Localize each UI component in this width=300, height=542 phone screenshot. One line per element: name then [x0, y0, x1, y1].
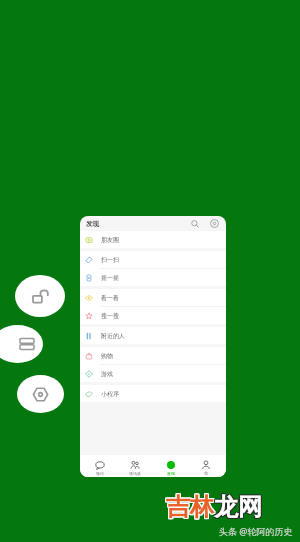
staticText: 扫一扫: [101, 256, 119, 264]
button[interactable]: Search: [188, 217, 201, 230]
staticText: 吉林: [166, 492, 214, 522]
staticText: 附近的人: [101, 332, 125, 340]
staticText: 龙网: [215, 491, 263, 521]
staticText: 发现: [167, 471, 175, 476]
staticText: 小程序: [101, 390, 119, 398]
staticText: 龙网: [214, 491, 262, 521]
staticText: 发现: [86, 220, 99, 228]
button[interactable]: 朋友圈: [80, 231, 226, 248]
staticText: 龙网: [213, 491, 261, 521]
staticText: 龙网: [215, 492, 263, 522]
staticText: 吉林: [167, 491, 215, 521]
staticText: 购物: [101, 352, 113, 360]
staticText: 通讯录: [129, 471, 141, 476]
button[interactable]: Unlock: [15, 275, 65, 317]
button[interactable]: 附近的人: [80, 327, 226, 344]
staticText: 游戏: [101, 370, 113, 378]
button[interactable]: 小程序: [80, 385, 226, 402]
staticText: 我: [204, 471, 208, 476]
staticText: 吉林: [165, 491, 213, 521]
button[interactable]: 通讯录: [119, 459, 151, 477]
button[interactable]: 购物: [80, 347, 226, 364]
button[interactable]: Split screen: [0, 325, 43, 363]
staticText: 吉林: [166, 491, 214, 521]
button[interactable]: 游戏: [80, 365, 226, 382]
staticText: 吉林: [167, 493, 215, 523]
button[interactable]: Settings: [17, 375, 64, 413]
button[interactable]: 看一看: [80, 289, 226, 306]
staticText: 吉林: [165, 493, 213, 523]
staticText: 吉林: [165, 492, 213, 522]
staticText: 朋友圈: [101, 236, 119, 244]
button[interactable]: 我: [190, 459, 222, 477]
staticText: 龙网: [213, 492, 261, 522]
staticText: 吉林: [167, 492, 215, 522]
button[interactable]: 摇一摇: [80, 269, 226, 286]
staticText: 头条 @轮阿的历史: [219, 525, 293, 537]
staticText: 微信: [96, 471, 104, 476]
button[interactable]: 微信: [84, 459, 116, 477]
staticText: 摇一摇: [101, 274, 119, 282]
button[interactable]: More: [208, 217, 221, 230]
staticText: 龙网: [214, 492, 262, 522]
staticText: 搜一搜: [101, 312, 119, 320]
staticText: 吉林: [166, 493, 214, 523]
button[interactable]: 搜一搜: [80, 307, 226, 324]
staticText: 龙网: [214, 493, 262, 523]
staticText: 龙网: [215, 493, 263, 523]
button[interactable]: 发现: [155, 459, 187, 477]
button[interactable]: 扫一扫: [80, 251, 226, 268]
staticText: 龙网: [213, 493, 261, 523]
staticText: 看一看: [101, 294, 119, 302]
